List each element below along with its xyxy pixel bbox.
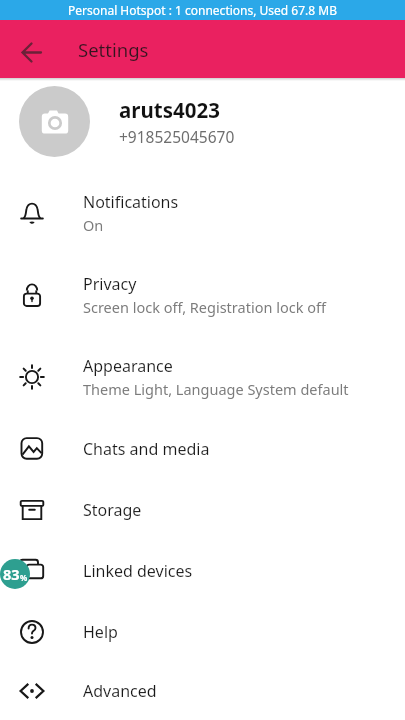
staticText: Appearance bbox=[83, 355, 173, 377]
button[interactable]: Notifications bbox=[0, 172, 405, 254]
staticText: Screen lock off, Registration lock off bbox=[83, 297, 326, 317]
staticText: Chats and media bbox=[83, 438, 210, 460]
staticText: Storage bbox=[83, 499, 142, 521]
staticText: Advanced bbox=[83, 680, 157, 702]
staticText: Theme Light, Language System default bbox=[83, 379, 349, 399]
staticText: Personal Hotspot : 1 connections, Used 6… bbox=[68, 2, 337, 18]
staticText: Notifications bbox=[83, 191, 179, 213]
staticText: aruts4023 bbox=[119, 96, 220, 124]
button[interactable]: aruts4023 bbox=[0, 78, 405, 172]
staticText: Help bbox=[83, 621, 118, 643]
staticText: Linked devices bbox=[83, 560, 193, 582]
button[interactable]: Linked devices bbox=[0, 540, 405, 601]
button[interactable]: Appearance bbox=[0, 336, 405, 418]
staticText: On bbox=[83, 215, 104, 235]
staticText: +918525045670 bbox=[119, 126, 235, 147]
staticText: Privacy bbox=[83, 273, 137, 295]
staticText: Settings bbox=[78, 37, 149, 62]
button[interactable] bbox=[0, 20, 58, 78]
button[interactable]: Privacy bbox=[0, 254, 405, 336]
button[interactable]: Chats and media bbox=[0, 418, 405, 479]
staticText: % bbox=[20, 572, 28, 583]
staticText: 83 bbox=[3, 564, 20, 584]
button[interactable]: Help bbox=[0, 601, 405, 662]
button[interactable]: Storage bbox=[0, 479, 405, 540]
button[interactable]: Advanced bbox=[0, 662, 405, 720]
